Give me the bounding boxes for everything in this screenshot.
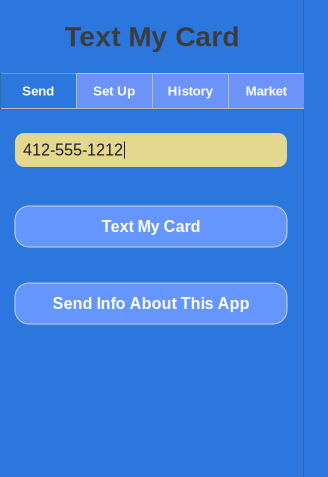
staticText: Text My Card [101,218,200,235]
staticText: Send Info About This App [52,295,249,312]
staticText: History [167,84,212,98]
staticText: Text My Card [64,21,239,52]
staticText: Send [22,84,54,98]
button[interactable]: History [152,73,228,109]
staticText: Set Up [93,84,135,98]
button[interactable]: Market [228,73,304,109]
button[interactable]: Send [0,73,76,109]
button[interactable]: Set Up [76,73,152,109]
button[interactable]: Text My Card [15,206,287,247]
button[interactable]: Send Info About This App [15,283,287,324]
staticText: 412-555-1212 [23,141,123,159]
staticText: Market [245,84,286,98]
